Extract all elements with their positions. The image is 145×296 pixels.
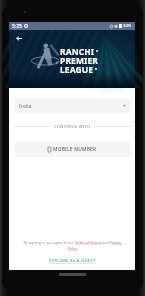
staticText: CONTINUE WITH — [54, 124, 91, 130]
staticText: LEAGUE — [60, 64, 94, 73]
button[interactable]: MOBILE NUMBER — [15, 142, 130, 157]
staticText: PREMIER — [60, 55, 98, 64]
button[interactable]: EXPLORE AS A GUEST — [15, 258, 130, 264]
staticText: EXPLORE AS A GUEST — [49, 258, 96, 264]
staticText: MOBILE NUMBER — [53, 146, 97, 153]
staticText: By signing in, you agree to our Terms of… — [19, 240, 126, 251]
staticText: India — [19, 102, 32, 109]
button[interactable]: India — [15, 98, 130, 113]
staticText: 34% — [123, 23, 132, 29]
button[interactable]: Back — [13, 33, 24, 44]
staticText: RANCHI — [60, 46, 95, 55]
staticText: 5:25 — [12, 23, 22, 30]
